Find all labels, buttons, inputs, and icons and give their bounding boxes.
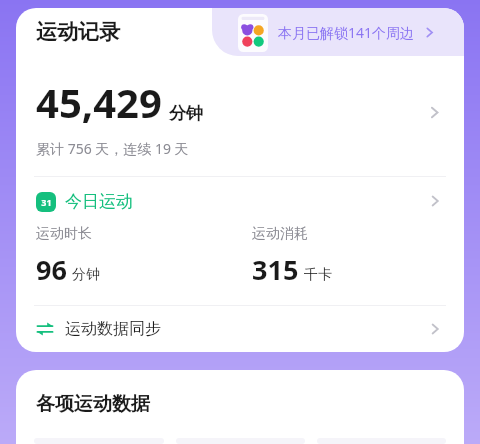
staticText: 本月已解锁141个周边: [278, 23, 415, 42]
button[interactable]: Sync: [16, 306, 464, 352]
other: More: [428, 194, 442, 208]
other: Rewards: [238, 12, 268, 52]
staticText: 运动记录: [36, 19, 120, 45]
button[interactable]: Rewards: [212, 8, 464, 56]
staticText: 分钟: [169, 103, 203, 124]
staticText: 运动消耗: [252, 225, 308, 243]
other: More: [428, 322, 442, 336]
staticText: 千卡: [304, 266, 332, 284]
staticText: 96: [36, 251, 67, 288]
other: Calendar: [36, 192, 56, 212]
staticText: 分钟: [72, 266, 100, 284]
staticText: 315: [252, 251, 299, 288]
button[interactable]: 45,429: [16, 56, 464, 176]
other: More: [427, 105, 442, 120]
staticText: 45,429: [36, 75, 162, 129]
other: Sync: [36, 320, 54, 338]
button[interactable]: Calendar: [16, 177, 464, 225]
staticText: 今日运动: [65, 191, 133, 212]
staticText: 运动时长: [36, 225, 92, 243]
staticText: 各项运动数据: [36, 392, 150, 416]
staticText: 累计 756 天，连续 19 天: [36, 139, 189, 158]
button[interactable]: 运动消耗: [252, 225, 452, 288]
other: More: [423, 26, 436, 39]
button[interactable]: 运动时长: [36, 225, 252, 288]
staticText: 运动数据同步: [65, 319, 161, 339]
staticText: 31: [41, 196, 52, 208]
